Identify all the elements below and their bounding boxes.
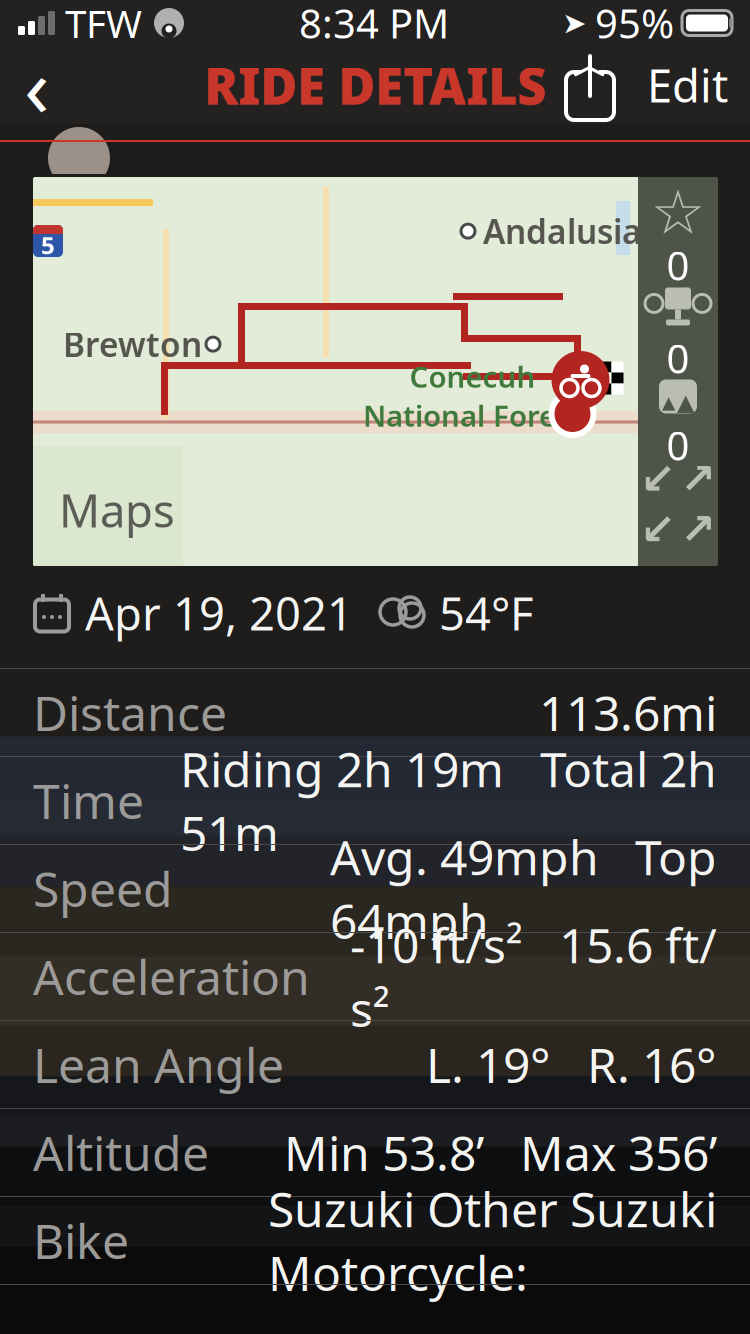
staticText: ‹ <box>24 30 50 140</box>
staticText: Min 53.8’ Max 356’ <box>284 1121 717 1184</box>
staticText: Suzuki Other Suzuki Motorcycle: <box>268 1177 717 1304</box>
staticText: ↙ <box>640 455 676 503</box>
button[interactable]: Favorites <box>638 195 718 287</box>
staticText: Bike <box>33 1209 129 1272</box>
staticText: ▲ <box>662 393 675 412</box>
staticText: Conecuh <box>409 357 535 396</box>
staticText: Altitude <box>33 1121 209 1184</box>
button[interactable]: Time <box>0 756 750 844</box>
staticText: 113.6mi <box>539 681 717 744</box>
staticText: 8:34 PM <box>299 0 449 49</box>
staticText: ︿ <box>572 45 607 87</box>
staticText: Speed <box>33 857 173 920</box>
staticText: ➤ <box>562 6 587 40</box>
staticText: Andalusia <box>483 209 642 253</box>
staticText: ☆ <box>650 178 705 247</box>
button[interactable]: Acceleration <box>0 932 750 1020</box>
button[interactable]: Expand map <box>638 469 718 539</box>
staticText: -10 ft/s² 15.6 ft/s² <box>350 913 717 1040</box>
button[interactable]: Lean Angle <box>0 1020 750 1108</box>
button[interactable]: Achievements <box>638 287 718 381</box>
staticText: RIDE DETAILS <box>204 51 546 119</box>
staticText: Apr 19, 2021 <box>85 583 353 643</box>
staticText: National Forest <box>363 396 582 435</box>
staticText: 0 <box>666 331 689 384</box>
staticText: TFW <box>65 0 142 49</box>
staticText: ↗ <box>680 505 716 553</box>
staticText: 5 <box>41 229 55 261</box>
button[interactable]: Altitude <box>0 1108 750 1196</box>
staticText: 0 <box>666 238 689 291</box>
button[interactable]: Bike <box>0 1196 750 1284</box>
staticText: 0 <box>666 418 689 471</box>
staticText: Avg. 49mph Top 64mph <box>330 825 717 952</box>
staticText: L. 19° R. 16° <box>426 1033 717 1096</box>
button[interactable]: Distance <box>0 668 750 756</box>
staticText: ↗ <box>680 455 716 503</box>
button[interactable]: Back <box>0 46 74 124</box>
staticText: Riding 2h 19m Total 2h 51m <box>180 737 717 864</box>
staticText: Edit <box>647 55 728 115</box>
button[interactable]: Speed <box>0 844 750 932</box>
staticText: ▲ <box>677 390 694 415</box>
staticText: Maps <box>59 480 175 540</box>
button[interactable]: Share <box>559 48 621 122</box>
staticText: 54°F <box>439 583 534 643</box>
staticText: Acceleration <box>33 945 310 1008</box>
staticText: ↙ <box>640 505 676 553</box>
button[interactable]: Photos <box>638 381 718 469</box>
staticText: Time <box>33 769 144 832</box>
staticText: Brewton <box>63 322 202 366</box>
staticText: Distance <box>33 681 227 744</box>
staticText: 95% <box>595 0 674 49</box>
staticText: Lean Angle <box>33 1033 284 1096</box>
button[interactable]: Edit <box>621 46 750 124</box>
